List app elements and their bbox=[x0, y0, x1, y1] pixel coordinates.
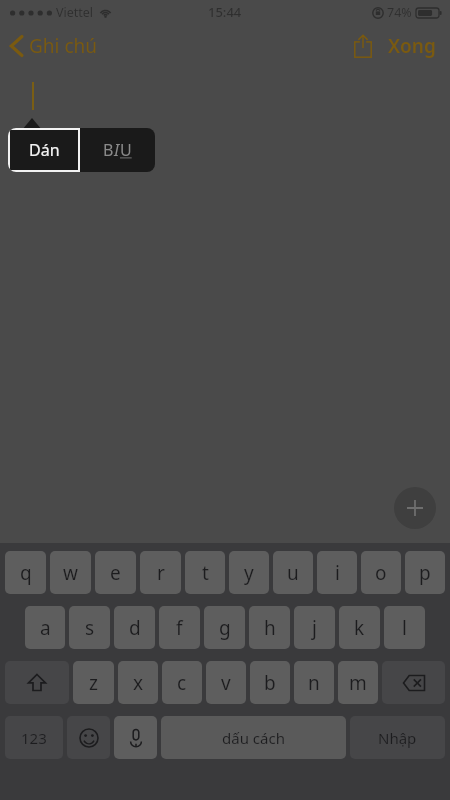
button[interactable]: h bbox=[249, 606, 290, 649]
button[interactable]: b bbox=[250, 661, 290, 704]
staticText: Viettel bbox=[56, 4, 94, 21]
staticText: f bbox=[176, 615, 183, 641]
button[interactable]: r bbox=[140, 551, 181, 594]
staticText: d bbox=[129, 615, 141, 641]
button[interactable]: x bbox=[118, 661, 158, 704]
button[interactable]: q bbox=[5, 551, 46, 594]
staticText: Xong bbox=[388, 33, 436, 59]
button[interactable]: dấu cách bbox=[161, 716, 346, 759]
button[interactable]: m bbox=[338, 661, 378, 704]
button[interactable]: d bbox=[114, 606, 155, 649]
button[interactable]: z bbox=[73, 661, 114, 704]
button[interactable]: Dictate bbox=[114, 716, 157, 759]
button[interactable]: j bbox=[294, 606, 335, 649]
staticText: v bbox=[221, 670, 231, 696]
button[interactable]: Add bbox=[394, 487, 436, 529]
button[interactable]: u bbox=[273, 551, 313, 594]
button[interactable]: Ghi chú bbox=[0, 29, 108, 63]
staticText: s bbox=[85, 615, 95, 641]
staticText: w bbox=[63, 560, 78, 586]
staticText: m bbox=[349, 670, 367, 696]
staticText: 15:44 bbox=[208, 3, 242, 21]
staticText: a bbox=[40, 615, 51, 641]
staticText: x bbox=[133, 670, 144, 696]
staticText: e bbox=[110, 560, 121, 586]
button[interactable]: c bbox=[162, 661, 202, 704]
button[interactable]: p bbox=[405, 551, 445, 594]
button[interactable]: i bbox=[317, 551, 357, 594]
staticText: j bbox=[312, 615, 317, 641]
button[interactable]: a bbox=[25, 606, 65, 649]
staticText: 74% bbox=[387, 4, 412, 21]
button[interactable]: 123 bbox=[5, 716, 63, 759]
button[interactable]: y bbox=[229, 551, 269, 594]
button[interactable]: w bbox=[50, 551, 91, 594]
staticText: b bbox=[264, 670, 276, 696]
staticText: Dán bbox=[29, 139, 60, 161]
button[interactable]: Dán bbox=[10, 130, 78, 170]
staticText: c bbox=[177, 670, 187, 696]
button[interactable]: e bbox=[95, 551, 136, 594]
staticText: dấu cách bbox=[222, 728, 285, 748]
button[interactable]: l bbox=[384, 606, 425, 649]
button[interactable]: Shift bbox=[5, 661, 69, 704]
staticText: u bbox=[287, 560, 299, 586]
staticText: y bbox=[244, 560, 254, 586]
staticText: k bbox=[354, 615, 365, 641]
staticText: I bbox=[114, 139, 120, 161]
staticText: U bbox=[120, 139, 132, 161]
staticText: l bbox=[402, 615, 407, 641]
staticText: h bbox=[264, 615, 276, 641]
button[interactable]: Xong bbox=[382, 27, 450, 65]
staticText: Nhập bbox=[378, 728, 417, 748]
button[interactable]: Backspace bbox=[382, 661, 445, 704]
staticText: B bbox=[103, 139, 114, 161]
button[interactable]: Share bbox=[344, 30, 382, 62]
button[interactable]: o bbox=[361, 551, 401, 594]
button[interactable]: Nhập bbox=[350, 716, 445, 759]
button[interactable]: s bbox=[69, 606, 110, 649]
button[interactable]: v bbox=[206, 661, 246, 704]
staticText: Ghi chú bbox=[29, 33, 98, 59]
staticText: o bbox=[375, 560, 387, 586]
staticText: r bbox=[157, 560, 165, 586]
button[interactable]: f bbox=[159, 606, 200, 649]
button[interactable]: n bbox=[294, 661, 334, 704]
staticText: t bbox=[202, 560, 209, 586]
button[interactable]: t bbox=[185, 551, 225, 594]
staticText: p bbox=[419, 560, 431, 586]
staticText: i bbox=[335, 560, 340, 586]
staticText: z bbox=[89, 670, 98, 696]
button[interactable]: Emoji bbox=[67, 716, 110, 759]
button[interactable]: B bbox=[80, 128, 155, 172]
staticText: g bbox=[219, 615, 231, 641]
staticText: 123 bbox=[21, 728, 47, 748]
staticText: q bbox=[20, 560, 32, 586]
staticText: n bbox=[308, 670, 320, 696]
button[interactable]: g bbox=[204, 606, 245, 649]
button[interactable]: k bbox=[339, 606, 380, 649]
